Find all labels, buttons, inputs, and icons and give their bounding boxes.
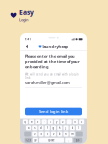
staticText: h <box>59 126 61 130</box>
button[interactable]: u <box>60 119 65 124</box>
staticText: space <box>48 138 55 142</box>
staticText: a <box>28 126 29 130</box>
button[interactable]: e <box>35 119 40 124</box>
button[interactable]: d <box>38 125 43 130</box>
button[interactable]: q <box>23 119 28 124</box>
staticText: k <box>72 126 73 130</box>
button[interactable]: m <box>70 132 75 136</box>
staticText: b <box>59 132 61 136</box>
staticText: 123 <box>25 138 31 142</box>
button[interactable]: x <box>38 132 43 136</box>
button[interactable]: Send login link <box>25 108 82 115</box>
button[interactable]: v <box>51 132 56 136</box>
button[interactable]: f <box>45 125 50 130</box>
button[interactable]: l <box>76 125 81 130</box>
staticText: e <box>37 120 39 123</box>
staticText: r <box>44 120 45 123</box>
button[interactable]: 123 <box>25 138 32 143</box>
staticText: d <box>40 126 42 130</box>
staticText: q <box>24 120 26 123</box>
staticText: . <box>68 138 69 142</box>
button[interactable]: o <box>73 119 78 124</box>
staticText: Send login link <box>39 109 68 114</box>
staticText: w <box>31 120 33 123</box>
button[interactable]: c <box>45 132 50 136</box>
button[interactable]: b <box>57 132 62 136</box>
button[interactable]: . <box>65 138 72 143</box>
staticText: y <box>56 120 57 123</box>
staticText: 9:41 <box>24 37 31 41</box>
staticText: z <box>34 132 35 136</box>
button[interactable]: y <box>54 119 59 124</box>
staticText: p <box>81 120 83 123</box>
button[interactable]: k <box>70 125 75 130</box>
staticText: Please enter the email you provided at t… <box>25 53 80 69</box>
staticText: Easy <box>19 8 34 17</box>
staticText: @ <box>34 138 36 142</box>
button[interactable]: go <box>73 138 82 143</box>
staticText: c <box>47 132 48 136</box>
staticText: t <box>50 120 51 123</box>
staticText: n <box>65 132 67 136</box>
button[interactable]: r <box>42 119 47 124</box>
button[interactable]: space <box>39 138 64 143</box>
staticText: We will send you an email with a login l… <box>25 73 79 80</box>
staticText: s <box>34 126 35 130</box>
staticText: v <box>53 132 54 136</box>
staticText: go <box>76 138 80 142</box>
staticText: g <box>52 126 54 130</box>
staticText: f <box>47 126 48 130</box>
button[interactable]: Back <box>24 43 29 50</box>
staticText: m <box>71 132 73 136</box>
staticText: x <box>40 132 41 136</box>
button[interactable]: t <box>48 119 53 124</box>
button[interactable]: p <box>79 119 84 124</box>
button[interactable]: n <box>63 132 69 136</box>
staticText: Login <box>19 17 28 22</box>
staticText: o <box>74 120 76 123</box>
button[interactable]: j <box>63 125 68 130</box>
button[interactable]: w <box>29 119 34 124</box>
staticText: u <box>62 120 64 123</box>
staticText: laundryheap <box>42 44 68 49</box>
button[interactable]: h <box>57 125 62 130</box>
button[interactable]: s <box>32 125 37 130</box>
button[interactable]: g <box>51 125 56 130</box>
button[interactable]: a <box>26 125 31 130</box>
button[interactable]: z <box>32 132 37 136</box>
staticText: sarah.miller@gmail.com <box>25 80 70 85</box>
staticText: l <box>78 126 79 130</box>
button[interactable]: @ <box>33 138 38 143</box>
button[interactable]: i <box>67 119 72 124</box>
